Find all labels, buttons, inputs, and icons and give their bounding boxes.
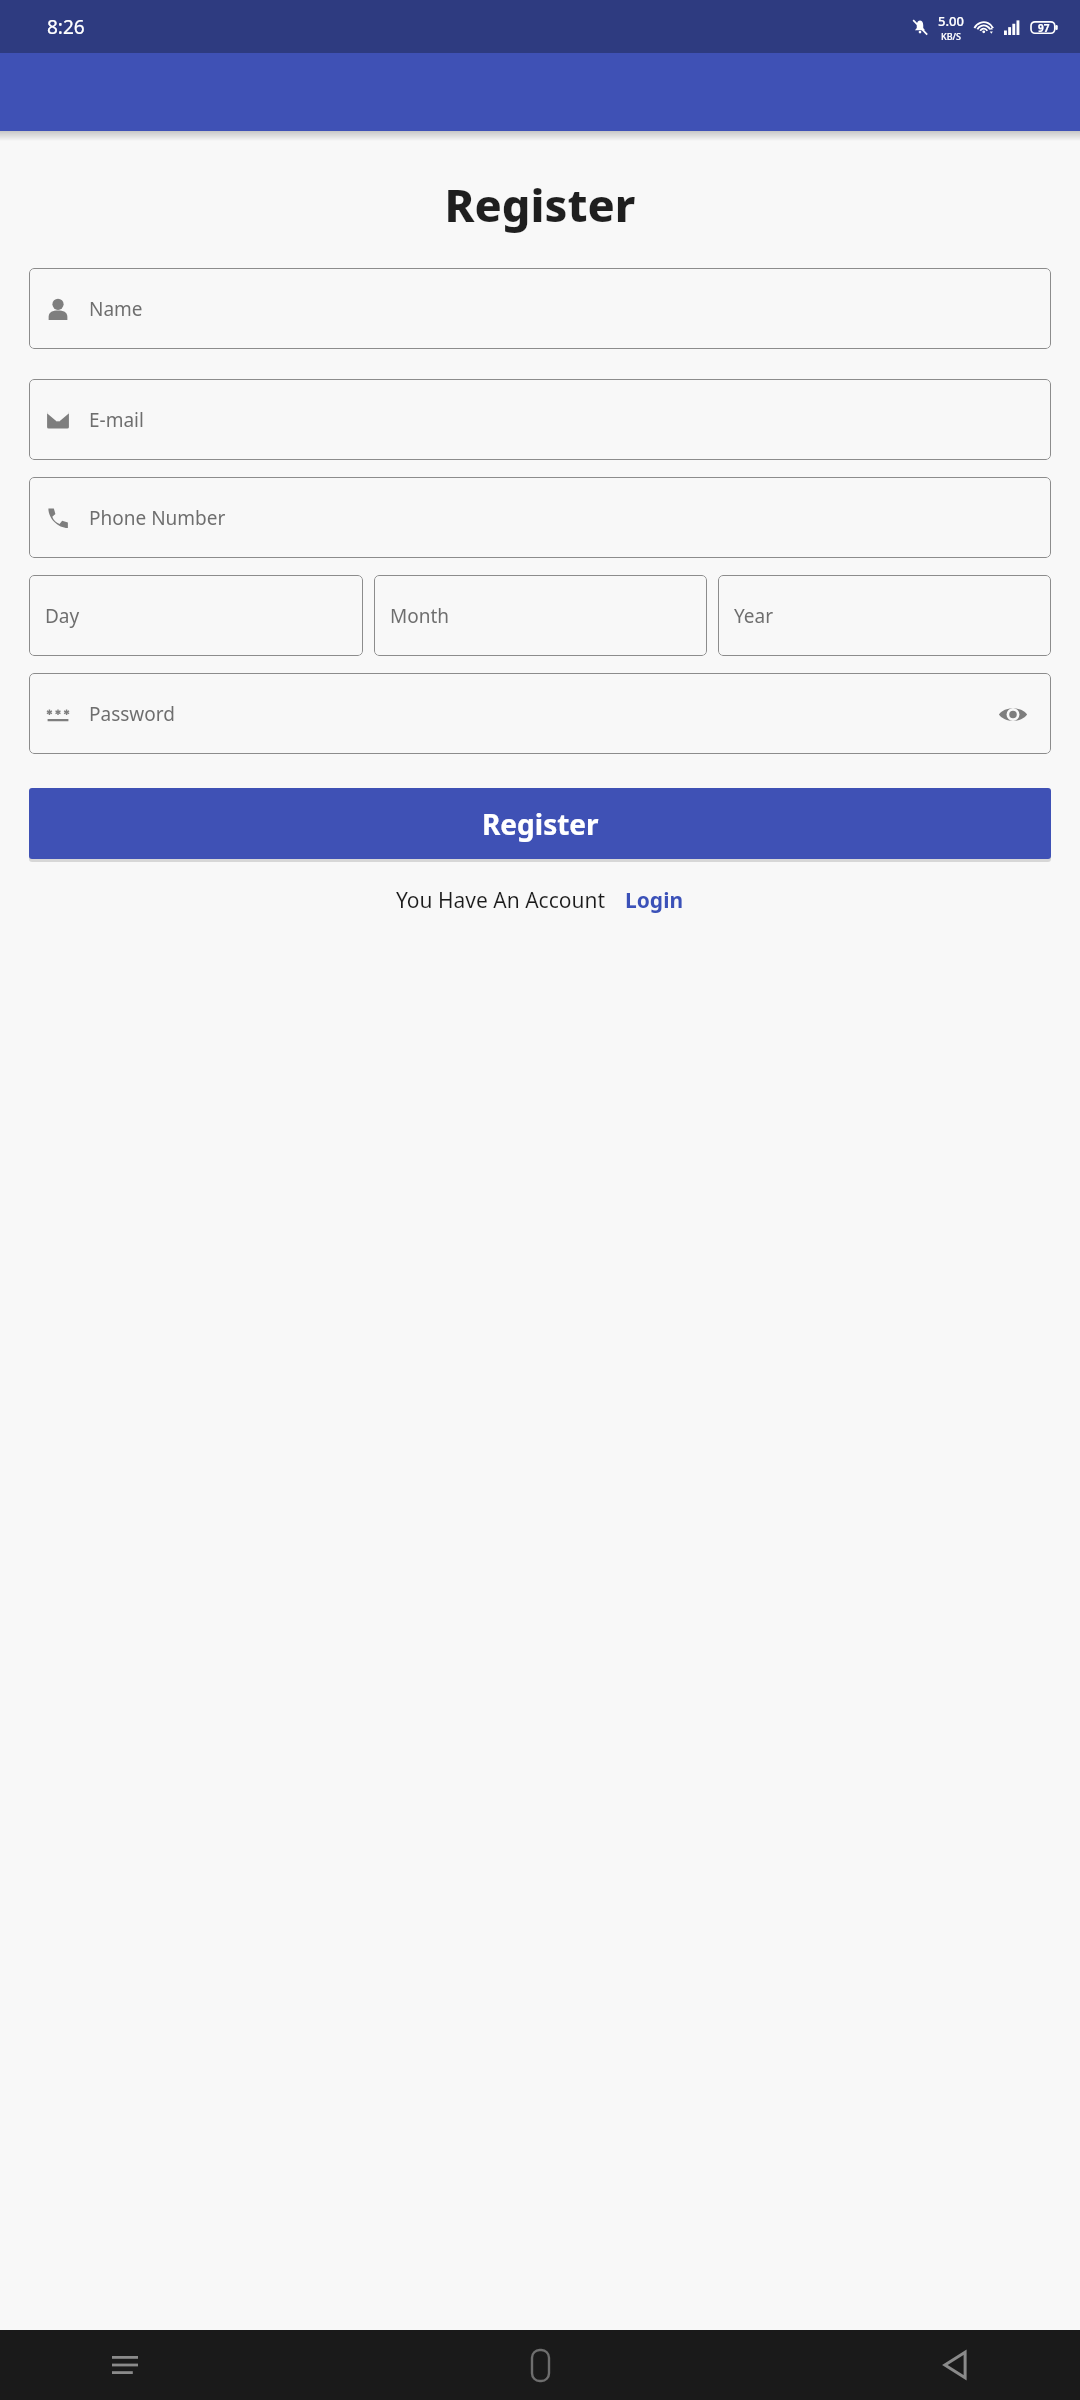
staticText: You Have An Account bbox=[396, 886, 605, 915]
staticText: Name bbox=[89, 296, 143, 322]
staticText: 97 bbox=[1038, 21, 1050, 35]
button[interactable]: E-mail bbox=[29, 379, 1051, 460]
staticText: Phone Number bbox=[89, 505, 226, 531]
button[interactable]: Recent apps bbox=[98, 2338, 152, 2392]
staticText: Day bbox=[45, 603, 80, 629]
staticText: E-mail bbox=[89, 407, 144, 433]
button[interactable]: Day bbox=[29, 575, 363, 656]
button[interactable]: Login bbox=[625, 886, 684, 915]
staticText: Register bbox=[482, 805, 599, 843]
button[interactable]: Phone Number bbox=[29, 477, 1051, 558]
staticText: Password bbox=[89, 701, 175, 727]
staticText: 5.00 bbox=[938, 12, 964, 30]
staticText: Year bbox=[734, 603, 774, 629]
button[interactable]: Show password bbox=[991, 692, 1035, 736]
button[interactable]: Register bbox=[29, 788, 1051, 859]
staticText: KB/S bbox=[941, 30, 961, 42]
button[interactable]: Name bbox=[29, 268, 1051, 349]
staticText: Login bbox=[625, 886, 684, 915]
button[interactable]: Year bbox=[718, 575, 1051, 656]
staticText: 8:26 bbox=[47, 14, 85, 40]
button[interactable]: Back bbox=[928, 2338, 982, 2392]
button[interactable]: Password bbox=[29, 673, 1051, 754]
button[interactable]: Month bbox=[374, 575, 707, 656]
button[interactable]: Home bbox=[513, 2338, 567, 2392]
staticText: Register bbox=[0, 174, 1080, 235]
staticText: Month bbox=[390, 603, 450, 629]
